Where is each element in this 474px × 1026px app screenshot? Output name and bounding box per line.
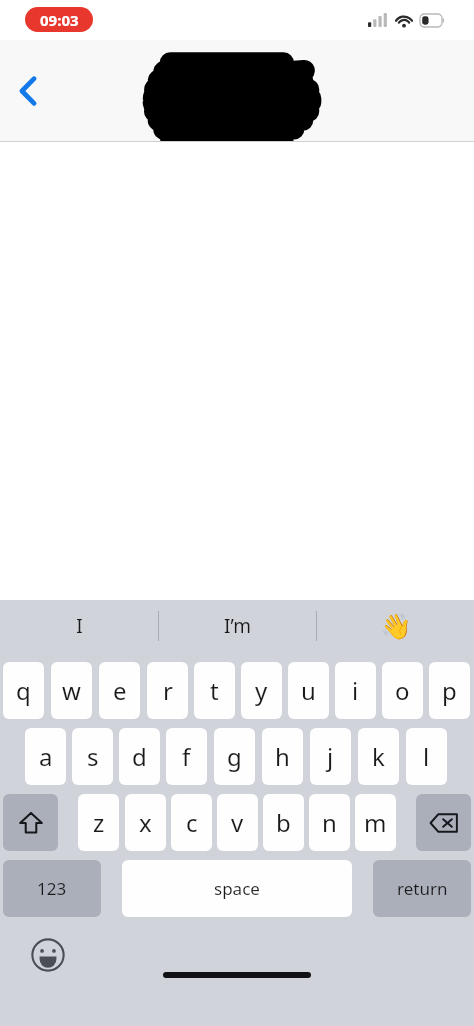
- button[interactable]: v: [217, 794, 258, 851]
- button[interactable]: n: [309, 794, 350, 851]
- staticText: x: [139, 806, 152, 839]
- staticText: w: [62, 674, 81, 707]
- staticText: s: [87, 740, 99, 773]
- staticText: n: [322, 806, 337, 839]
- staticText: i: [352, 674, 359, 707]
- button[interactable]: Back: [6, 69, 50, 113]
- staticText: d: [132, 740, 147, 773]
- button[interactable]: p: [429, 662, 470, 719]
- staticText: m: [364, 806, 387, 839]
- staticText: q: [16, 674, 31, 707]
- button[interactable]: u: [288, 662, 329, 719]
- staticText: return: [397, 877, 448, 900]
- button[interactable]: r: [147, 662, 188, 719]
- staticText: c: [186, 806, 198, 839]
- staticText: f: [182, 740, 191, 773]
- button[interactable]: z: [78, 794, 119, 851]
- button[interactable]: o: [382, 662, 423, 719]
- staticText: b: [276, 806, 291, 839]
- staticText: y: [255, 674, 268, 707]
- button[interactable]: 123: [3, 860, 101, 917]
- button[interactable]: g: [214, 728, 255, 785]
- button[interactable]: I’m: [159, 600, 316, 652]
- button[interactable]: space: [122, 860, 352, 917]
- button[interactable]: Backspace: [416, 794, 471, 851]
- button[interactable]: m: [355, 794, 396, 851]
- staticText: e: [113, 674, 127, 707]
- staticText: g: [227, 740, 242, 773]
- button[interactable]: 👋: [317, 600, 474, 652]
- button[interactable]: q: [3, 662, 44, 719]
- staticText: z: [93, 806, 105, 839]
- staticText: v: [231, 806, 244, 839]
- staticText: j: [327, 740, 334, 773]
- staticText: h: [275, 740, 290, 773]
- button[interactable]: h: [262, 728, 303, 785]
- staticText: space: [214, 877, 260, 900]
- staticText: u: [301, 674, 316, 707]
- staticText: k: [372, 740, 385, 773]
- button[interactable]: x: [125, 794, 166, 851]
- button[interactable]: c: [171, 794, 212, 851]
- button[interactable]: I: [0, 600, 158, 652]
- staticText: r: [163, 674, 173, 707]
- staticText: l: [423, 740, 430, 773]
- staticText: o: [395, 674, 410, 707]
- button[interactable]: f: [166, 728, 207, 785]
- button[interactable]: d: [119, 728, 160, 785]
- button[interactable]: Emoji keyboard: [25, 932, 71, 978]
- staticText: p: [442, 674, 457, 707]
- staticText: t: [210, 674, 219, 707]
- button[interactable]: s: [72, 728, 113, 785]
- staticText: a: [39, 740, 53, 773]
- button[interactable]: w: [51, 662, 92, 719]
- button[interactable]: j: [310, 728, 351, 785]
- button[interactable]: e: [99, 662, 140, 719]
- button[interactable]: t: [194, 662, 235, 719]
- staticText: 123: [37, 877, 67, 900]
- button[interactable]: l: [406, 728, 447, 785]
- button[interactable]: return: [373, 860, 471, 917]
- button[interactable]: b: [263, 794, 304, 851]
- staticText: I’m: [224, 613, 251, 639]
- button[interactable]: a: [25, 728, 66, 785]
- staticText: 09:03: [40, 10, 79, 30]
- button[interactable]: y: [241, 662, 282, 719]
- staticText: 👋: [380, 612, 412, 641]
- button[interactable]: k: [358, 728, 399, 785]
- button[interactable]: i: [335, 662, 376, 719]
- button[interactable]: Shift: [3, 794, 58, 851]
- staticText: I: [76, 613, 83, 639]
